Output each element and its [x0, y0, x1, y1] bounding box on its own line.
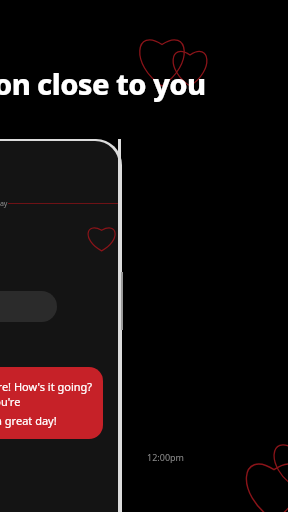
- staticText: Today: [0, 199, 8, 209]
- staticText: having a great day!: [0, 413, 57, 428]
- staticText: 12:00pm: [147, 451, 184, 463]
- staticText: on close to you: [0, 64, 206, 103]
- staticText: Hey there! How's it going? Hope you're: [0, 379, 93, 409]
- button[interactable]: [0, 291, 57, 322]
- button[interactable]: Hey there! How's it going? Hope you're: [0, 367, 103, 439]
